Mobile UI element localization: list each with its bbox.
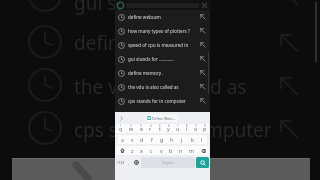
staticText: 5 (159, 124, 161, 128)
staticText: n (179, 147, 183, 154)
staticText: q (119, 125, 123, 132)
staticText: English (162, 160, 174, 165)
staticText: s (131, 136, 134, 143)
staticText: z (131, 147, 134, 154)
button[interactable]: 3 (136, 124, 146, 133)
staticText: gui st (74, 0, 124, 16)
staticText: k (191, 136, 194, 143)
staticText: 6 (168, 124, 170, 128)
staticText: cps stands for in computer (128, 98, 186, 104)
staticText: 1 (120, 124, 122, 128)
staticText: u (176, 125, 180, 132)
button[interactable]: d (137, 135, 147, 144)
staticText: m (189, 147, 194, 154)
staticText: r (149, 125, 152, 132)
staticText: define webcam (128, 14, 161, 20)
staticText: 8 (186, 124, 188, 128)
button[interactable]: Insert suggestion (199, 69, 207, 77)
staticText: cps s (74, 117, 118, 143)
button[interactable]: how many types of plotters ? (115, 24, 210, 38)
button[interactable]: Insert suggestion (199, 97, 207, 105)
staticText: p (203, 125, 207, 132)
staticText: 7 (177, 124, 179, 128)
button[interactable]: x (137, 146, 146, 155)
button[interactable]: Insert suggestion (199, 55, 207, 63)
staticText: b (169, 147, 173, 154)
staticText: w (129, 125, 134, 132)
staticText: defin (74, 30, 120, 56)
button[interactable]: the vdu is also called as (115, 80, 210, 94)
button[interactable]: Backspace (196, 146, 209, 155)
button[interactable]: speed of cpu is measured in (115, 38, 210, 52)
button[interactable]: Space (141, 157, 195, 168)
button[interactable]: g (157, 135, 167, 144)
button[interactable]: Insert suggestion (199, 27, 207, 35)
button[interactable]: Define Webc… (145, 114, 179, 122)
button[interactable]: a (118, 135, 127, 144)
button[interactable]: z (128, 146, 137, 155)
button[interactable]: k (187, 135, 197, 144)
button[interactable]: 0 (200, 124, 209, 133)
staticText: ?123 (117, 160, 125, 165)
button[interactable]: 5 (155, 124, 164, 133)
button[interactable]: j (177, 135, 187, 144)
button[interactable]: 2 (126, 124, 136, 133)
staticText: the vdu is also called as (128, 84, 179, 90)
staticText: 4 (150, 124, 152, 128)
button[interactable]: cps stands for in computer (115, 94, 210, 108)
staticText: , (128, 160, 130, 166)
staticText: x (140, 147, 143, 154)
staticText: d as (210, 74, 247, 100)
staticText: the v (74, 74, 118, 100)
staticText: e (140, 125, 143, 132)
staticText: o (194, 125, 198, 132)
button[interactable]: n (176, 146, 186, 155)
button[interactable]: b (166, 146, 176, 155)
button[interactable]: gui stands for ............ (115, 52, 210, 66)
staticText: gui stands for ............ (128, 56, 174, 62)
staticText: mputer (205, 117, 272, 143)
button[interactable]: s (127, 135, 137, 144)
staticText: 0 (204, 124, 206, 128)
button[interactable]: Insert suggestion (199, 41, 207, 49)
button[interactable]: l (197, 135, 207, 144)
button[interactable]: Shift (116, 146, 128, 155)
staticText: f (151, 136, 153, 143)
button[interactable]: h (167, 135, 177, 144)
staticText: speed of cpu is measured in (128, 42, 189, 48)
staticText: 2 (130, 124, 132, 128)
staticText: d (140, 136, 144, 143)
button[interactable]: Search field (115, 0, 210, 10)
button[interactable]: 9 (191, 124, 200, 133)
staticText: how many types of plotters ? (128, 28, 190, 34)
button[interactable]: Insert suggestion (199, 13, 207, 21)
button[interactable]: Expand suggestions (117, 114, 125, 122)
button[interactable]: 6 (164, 124, 173, 133)
button[interactable]: 4 (146, 124, 155, 133)
staticText: g (160, 136, 164, 143)
button[interactable]: 7 (173, 124, 182, 133)
staticText: y (167, 125, 170, 132)
button[interactable]: define memory . (115, 66, 210, 80)
button[interactable]: Search (196, 157, 209, 168)
button[interactable]: v (156, 146, 166, 155)
button[interactable]: define webcam (115, 10, 210, 24)
button[interactable]: c (146, 146, 156, 155)
button[interactable]: 8 (182, 124, 191, 133)
button[interactable]: f (147, 135, 157, 144)
button[interactable]: Emoji (132, 157, 140, 168)
button[interactable]: Comma (126, 157, 132, 168)
button[interactable]: Symbols (116, 157, 126, 168)
staticText: 9 (195, 124, 197, 128)
staticText: a (121, 136, 124, 143)
staticText: l (201, 136, 203, 143)
button[interactable]: 1 (116, 124, 126, 133)
staticText: i (186, 125, 188, 132)
staticText: t (159, 125, 161, 132)
staticText: c (150, 147, 153, 154)
staticText: h (170, 136, 174, 143)
button[interactable]: Insert suggestion (199, 83, 207, 91)
staticText: j (181, 136, 183, 143)
staticText: 3 (140, 124, 142, 128)
button[interactable]: m (186, 146, 196, 155)
